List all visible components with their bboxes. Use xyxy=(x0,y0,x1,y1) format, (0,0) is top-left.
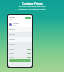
button[interactable] xyxy=(9,59,31,62)
button[interactable] xyxy=(8,32,32,37)
button[interactable] xyxy=(8,37,32,42)
button[interactable] xyxy=(25,17,31,19)
staticText: Set your own prices for each customer or… xyxy=(18,5,46,11)
button[interactable] xyxy=(9,51,31,55)
button[interactable] xyxy=(8,27,32,32)
button[interactable] xyxy=(8,42,32,47)
button[interactable] xyxy=(9,55,31,59)
button[interactable] xyxy=(9,47,31,51)
staticText: Custom Prices xyxy=(22,2,43,6)
